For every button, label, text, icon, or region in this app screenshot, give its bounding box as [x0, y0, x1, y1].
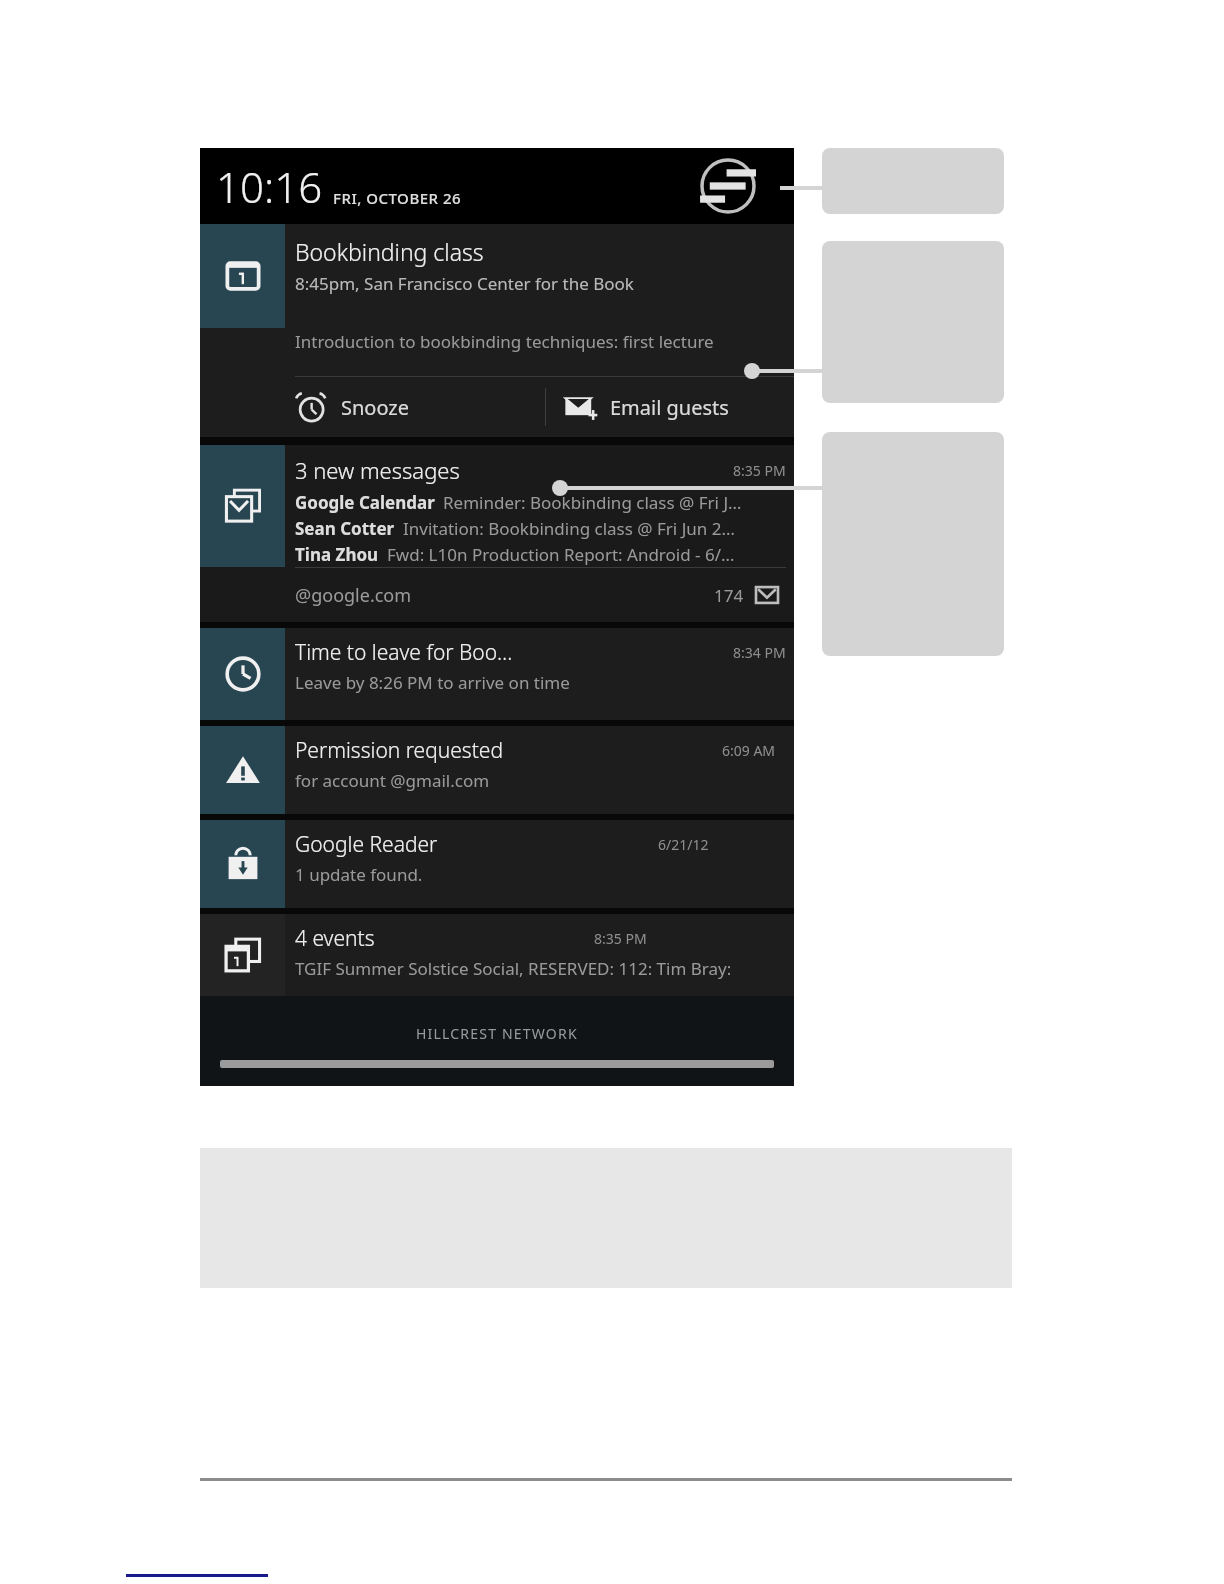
- staticText: 8:35 PM: [594, 929, 647, 948]
- staticText: 6:09 AM: [722, 741, 776, 760]
- staticText: 3 new messages: [295, 455, 460, 485]
- button[interactable]: 3 new messages: [200, 445, 794, 622]
- staticText: Sean Cotter: [295, 517, 395, 540]
- staticText: Introduction to bookbinding techniques: …: [295, 330, 714, 353]
- staticText: 1 update found.: [295, 863, 423, 886]
- button[interactable]: 4 events: [200, 914, 794, 996]
- staticText: HILLCREST NETWORK: [416, 1024, 578, 1043]
- button[interactable]: Time to leave for Bookbinding class: [200, 628, 794, 720]
- button[interactable]: @google.com: [200, 568, 794, 622]
- staticText: Snooze: [341, 394, 410, 421]
- staticText: Tina Zhou: [295, 543, 379, 566]
- staticText: 8:45pm, San Francisco Center for the Boo…: [295, 272, 634, 295]
- staticText: for account @gmail.com: [295, 769, 490, 792]
- button[interactable]: Permission requested: [200, 726, 794, 814]
- staticText: 174: [714, 584, 744, 607]
- staticText: Email guests: [610, 394, 729, 421]
- staticText: 10:16: [216, 158, 323, 215]
- staticText: 8:35 PM: [733, 461, 786, 480]
- staticText: Google Calendar: [295, 491, 435, 514]
- staticText: 4 events: [295, 924, 375, 953]
- button[interactable]: Snooze: [295, 377, 545, 437]
- button[interactable]: Quick settings: [700, 158, 756, 214]
- staticText: FRI, OCTOBER 26: [333, 188, 462, 208]
- button[interactable]: Email guests: [564, 377, 794, 437]
- staticText: Time to leave for Bookbinding class: [295, 638, 514, 667]
- staticText: Bookbinding class: [295, 236, 484, 267]
- staticText: Leave by 8:26 PM to arrive on time: [295, 671, 570, 694]
- staticText: TGIF Summer Solstice Social, RESERVED: 1…: [295, 957, 732, 980]
- staticText: Fwd: L10n Production Report: Android - 6…: [387, 543, 735, 566]
- button[interactable]: Google Reader: [200, 820, 794, 908]
- staticText: @google.com: [295, 583, 412, 608]
- staticText: 6/21/12: [658, 835, 709, 854]
- staticText: Permission requested: [295, 736, 503, 765]
- staticText: Invitation: Bookbinding class @ Fri Jun …: [403, 517, 735, 540]
- staticText: Google Reader: [295, 830, 438, 859]
- button[interactable]: Bookbinding class: [200, 224, 794, 437]
- staticText: Reminder: Bookbinding class @ Fri J…: [443, 491, 742, 514]
- staticText: 8:34 PM: [733, 643, 786, 662]
